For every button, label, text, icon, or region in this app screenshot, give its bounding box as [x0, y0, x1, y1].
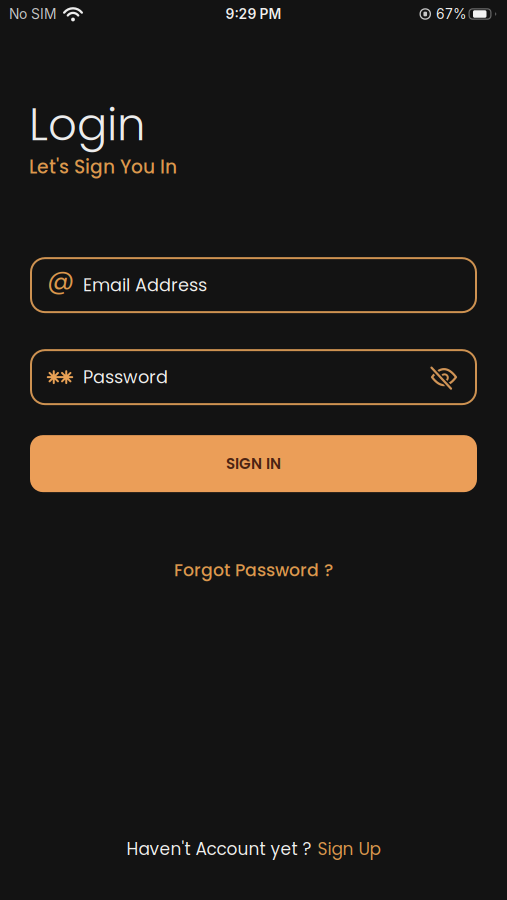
button[interactable]: Forgot Password ? [174, 558, 333, 582]
staticText: Login [29, 93, 145, 156]
button[interactable]: SIGN IN [30, 435, 477, 492]
staticText: Forgot Password ? [174, 558, 333, 582]
staticText: No SIM [9, 6, 57, 22]
staticText: Sign Up [317, 837, 380, 861]
staticText: Haven't Account yet ? [126, 837, 311, 861]
staticText: 67% [436, 6, 467, 22]
staticText: Password [83, 365, 168, 389]
button[interactable]: Sign Up [317, 837, 380, 861]
button[interactable]: Show password [431, 364, 457, 390]
staticText: @ [47, 261, 74, 299]
staticText: Email Address [83, 273, 207, 297]
staticText: SIGN IN [226, 453, 281, 474]
staticText: Let's Sign You In [29, 154, 177, 180]
staticText: 9:29 PM [225, 6, 281, 22]
